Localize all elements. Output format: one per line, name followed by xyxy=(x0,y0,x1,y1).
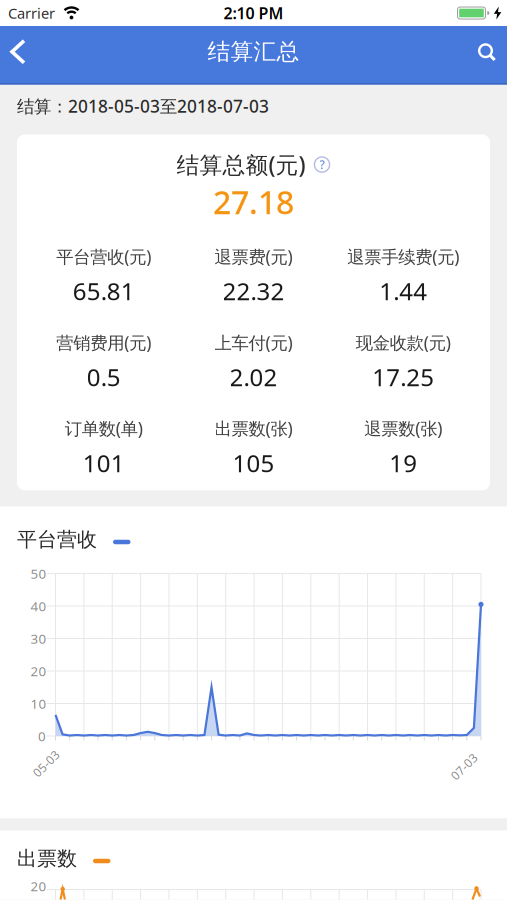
staticText: 营销费用(元) xyxy=(56,331,151,354)
staticText: 19 xyxy=(389,447,417,479)
staticText: 0.5 xyxy=(87,361,121,393)
staticText: 20 xyxy=(30,662,46,680)
staticText: 现金收款(元) xyxy=(356,331,451,354)
staticText: 订单数(单) xyxy=(65,417,143,440)
staticText: 27.18 xyxy=(213,181,294,223)
button[interactable]: 结算总额(元) xyxy=(176,134,330,180)
staticText: 22.32 xyxy=(222,275,284,307)
staticText: 结算总额(元) xyxy=(176,149,305,180)
staticText: 0 xyxy=(38,727,46,745)
staticText: 105 xyxy=(232,447,274,479)
staticText: 07-03 xyxy=(448,758,480,774)
staticText: ? xyxy=(319,157,324,172)
button[interactable] xyxy=(478,26,507,77)
staticText: 上车付(元) xyxy=(214,331,292,354)
staticText: 退票数(张) xyxy=(364,417,442,440)
staticText: 101 xyxy=(83,447,125,479)
staticText: 17.25 xyxy=(372,361,434,393)
staticText: 2.02 xyxy=(229,361,277,393)
staticText: 平台营收(元) xyxy=(56,245,151,268)
staticText: 30 xyxy=(30,630,46,647)
staticText: 50 xyxy=(30,565,46,582)
staticText: 结算：2018-05-03至2018-07-03 xyxy=(17,94,269,117)
staticText: 出票数 xyxy=(17,846,77,871)
staticText: 结算汇总 xyxy=(207,38,299,66)
staticText: 1.44 xyxy=(379,275,427,307)
button[interactable] xyxy=(0,25,28,79)
staticText: 65.81 xyxy=(73,275,135,307)
staticText: 40 xyxy=(30,597,46,615)
staticText: Carrier xyxy=(8,3,55,23)
staticText: 出票数(张) xyxy=(214,417,292,440)
staticText: 平台营收 xyxy=(17,527,97,552)
staticText: 10 xyxy=(30,695,46,712)
staticText: 退票手续费(元) xyxy=(347,245,459,268)
staticText: 2:10 PM xyxy=(223,2,283,24)
staticText: 05-03 xyxy=(30,755,62,771)
staticText: 退票费(元) xyxy=(214,245,292,268)
staticText: 20 xyxy=(30,877,46,895)
